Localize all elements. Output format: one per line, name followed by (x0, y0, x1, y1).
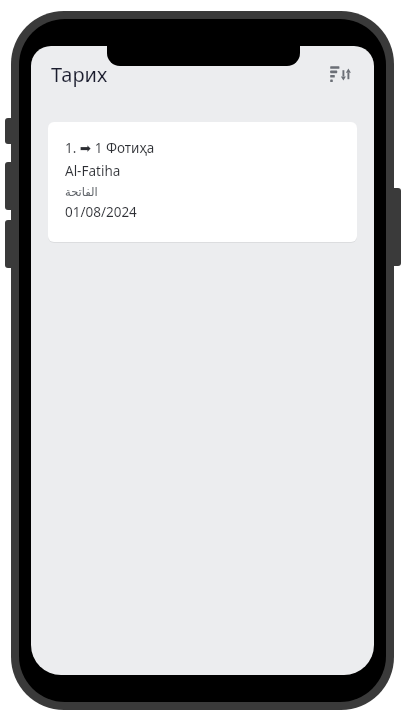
staticText: Тарих (51, 61, 108, 88)
staticText: 1. ➡ 1 Фотиҳа (65, 139, 155, 157)
button[interactable]: Sort (320, 54, 360, 94)
staticText: Al-Fatiha (65, 162, 121, 180)
button[interactable]: 1. ➡ 1 Фотиҳа (48, 122, 357, 242)
staticText: 01/08/2024 (65, 203, 137, 221)
staticText: الفاتحة (65, 185, 98, 198)
